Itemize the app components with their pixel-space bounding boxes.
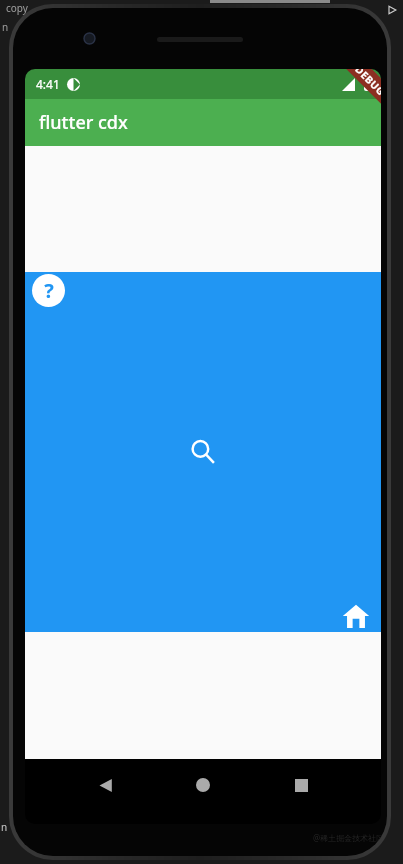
staticText: copy [6, 1, 28, 15]
staticText: n [2, 20, 9, 34]
button[interactable]: Search [181, 430, 225, 474]
staticText: DEBUG [352, 69, 381, 98]
staticText: flutter cdx [39, 110, 128, 135]
staticText: @稀土掘金技术社区 [313, 832, 385, 843]
button[interactable]: Home [339, 599, 373, 633]
button[interactable]: Back [87, 767, 123, 803]
button[interactable]: Home [185, 767, 221, 803]
button[interactable]: Recent apps [283, 767, 319, 803]
staticText: n [1, 820, 8, 834]
staticText: 4:41 [36, 76, 60, 92]
staticText: ? [44, 277, 54, 304]
button[interactable]: Help [32, 274, 65, 307]
